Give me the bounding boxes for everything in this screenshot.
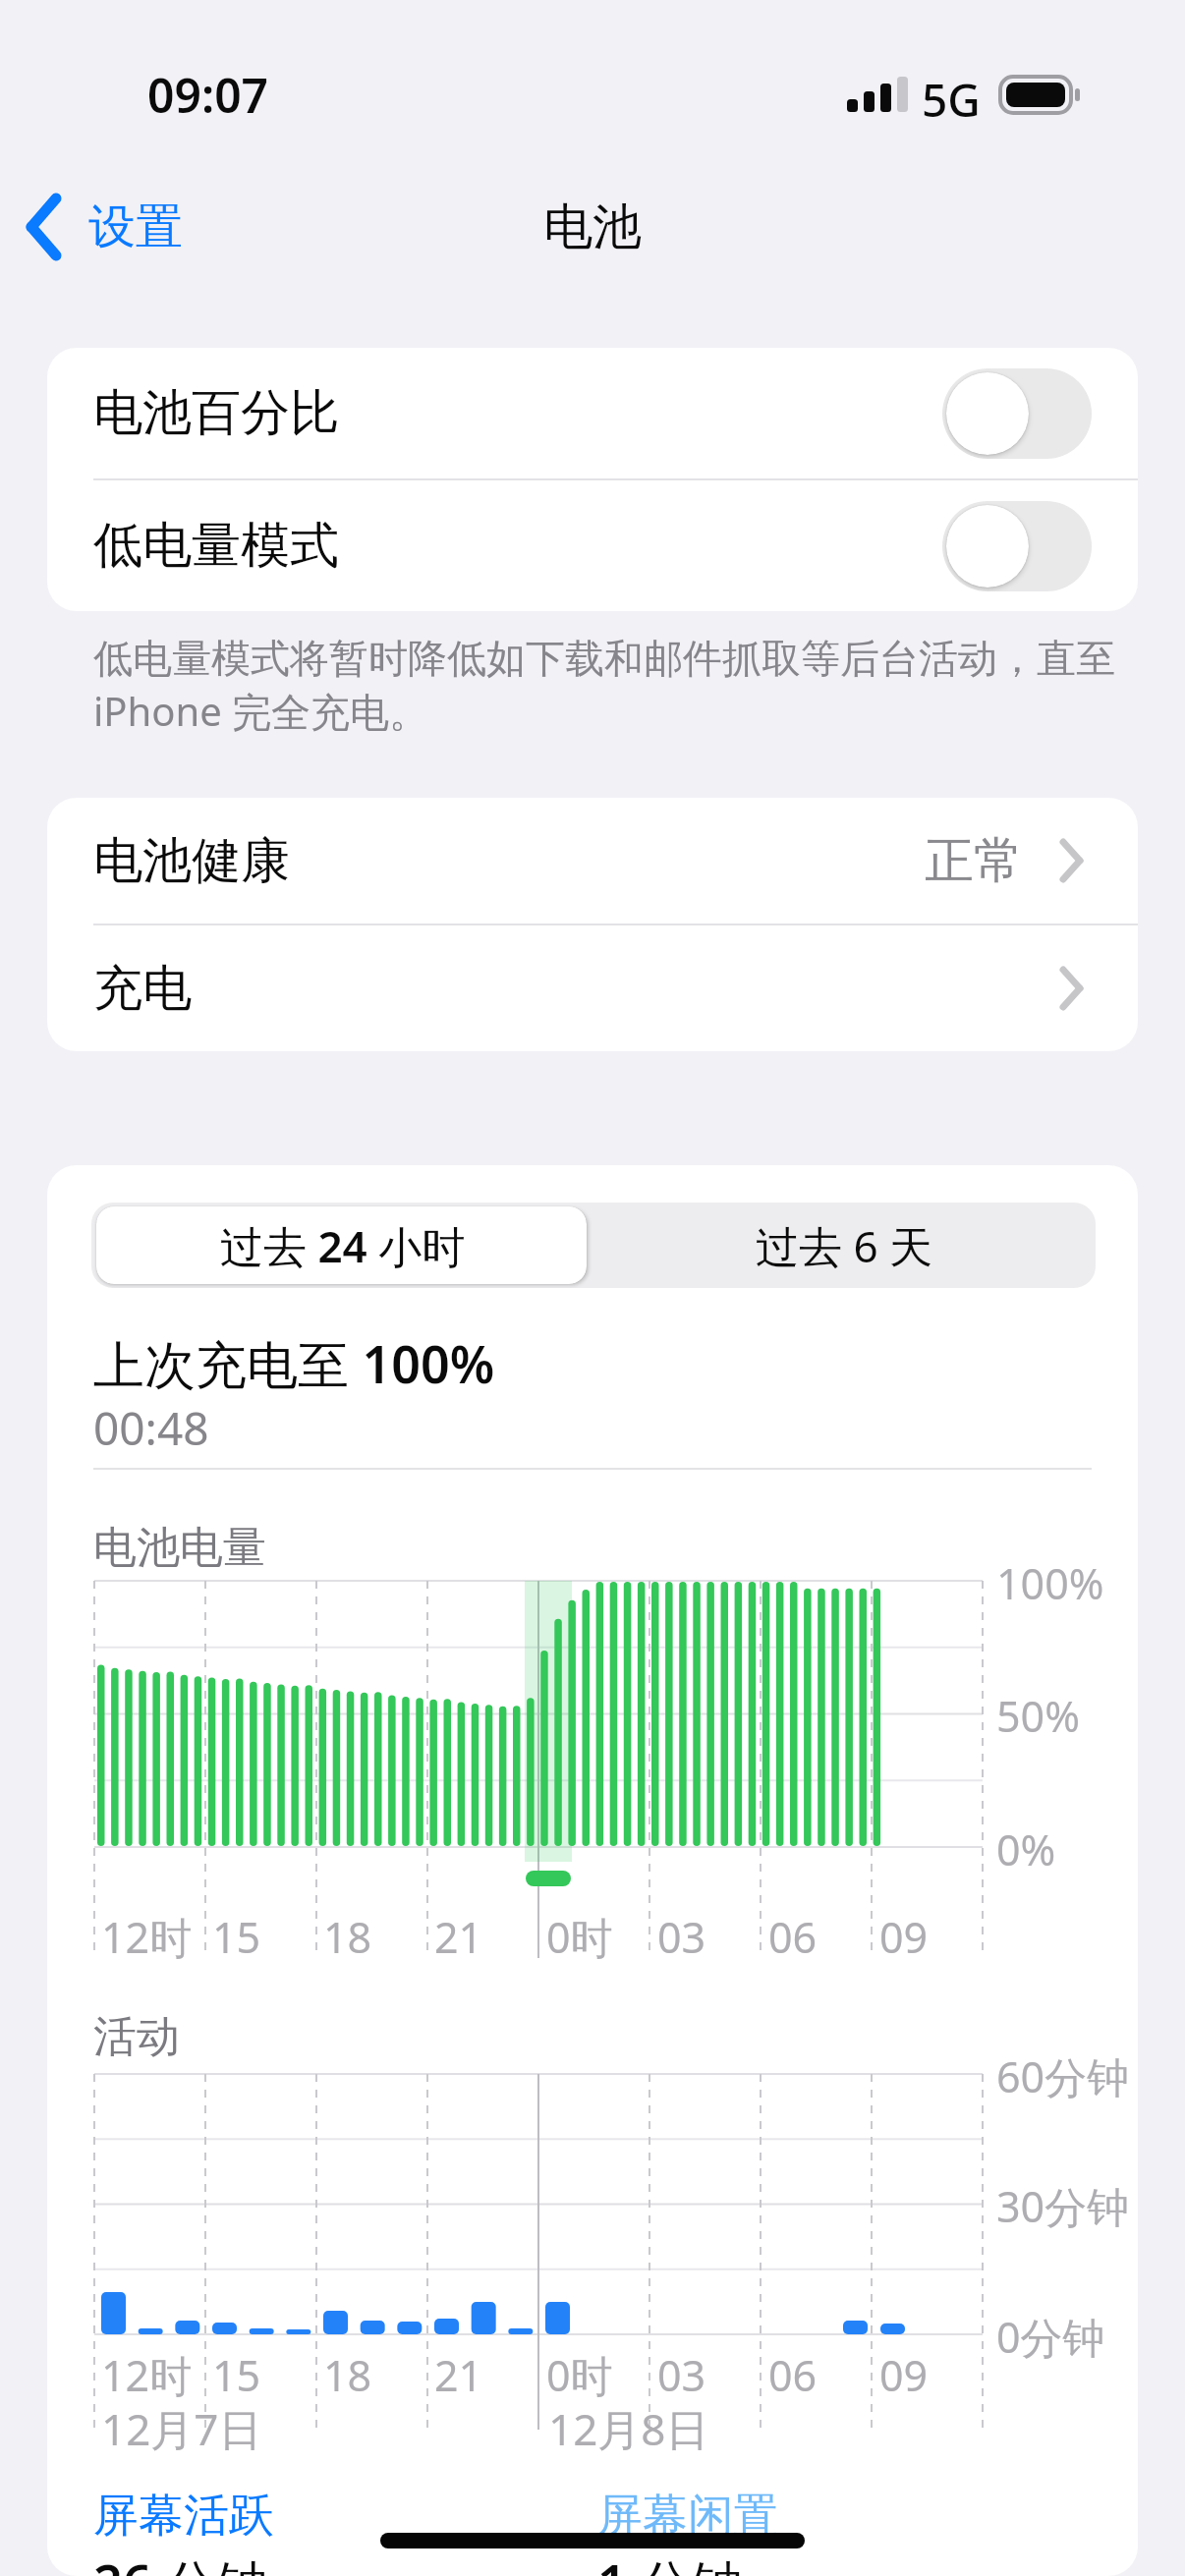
staticText: 03: [657, 2346, 706, 2404]
staticText: 15: [212, 2346, 261, 2404]
staticText: 电池电量: [93, 1521, 266, 1575]
staticText: 18: [323, 1908, 372, 1966]
staticText: 18: [323, 2346, 372, 2404]
staticText: 26 分钟: [93, 2548, 268, 2576]
staticText: 过去 6 天: [756, 1216, 933, 1275]
staticText: 06: [768, 2346, 818, 2404]
staticText: 03: [657, 1908, 706, 1966]
button[interactable]: 电池百分比: [47, 348, 1138, 478]
button[interactable]: [942, 368, 1092, 459]
staticText: 0时: [546, 1908, 613, 1966]
staticText: 正常: [925, 830, 1023, 892]
staticText: 09: [879, 1908, 929, 1966]
staticText: 电池百分比: [93, 382, 339, 444]
staticText: 100%: [996, 1554, 1104, 1612]
button[interactable]: 过去 24 小时: [91, 1203, 593, 1288]
staticText: 活动: [93, 2010, 180, 2064]
staticText: 1 分钟: [597, 2548, 743, 2576]
staticText: 12月8日: [548, 2399, 709, 2458]
staticText: 60分钟: [996, 2047, 1130, 2105]
button[interactable]: 充电: [47, 925, 1138, 1051]
button[interactable]: [942, 501, 1092, 591]
staticText: 21: [434, 1908, 483, 1966]
staticText: 06: [768, 1908, 818, 1966]
staticText: 设置: [88, 197, 183, 256]
staticText: 15: [212, 1908, 261, 1966]
button[interactable]: 屏幕闲置: [597, 2488, 778, 2545]
staticText: 5G: [922, 69, 981, 131]
button[interactable]: 屏幕活跃: [93, 2488, 274, 2545]
staticText: 低电量模式将暂时降低如下载和邮件抓取等后台活动，直至 iPhone 完全充电。: [93, 634, 1115, 738]
staticText: 09: [879, 2346, 929, 2404]
staticText: 0时: [546, 2346, 613, 2404]
staticText: 09:07: [147, 63, 269, 127]
staticText: 电池: [543, 196, 642, 258]
staticText: 00:48: [93, 1397, 209, 1459]
button[interactable]: 过去 6 天: [593, 1203, 1096, 1288]
staticText: 50%: [996, 1687, 1080, 1745]
staticText: 12月7日: [101, 2399, 262, 2458]
staticText: 上次充电至 100%: [93, 1328, 495, 1398]
button[interactable]: 低电量模式: [47, 480, 1138, 611]
staticText: 电池健康: [93, 830, 290, 892]
staticText: 过去 24 小时: [220, 1216, 466, 1275]
staticText: 12时: [101, 1908, 193, 1966]
staticText: 充电: [93, 958, 192, 1020]
button[interactable]: 电池健康: [47, 798, 1138, 924]
staticText: 12时: [101, 2346, 193, 2404]
button[interactable]: 设置: [24, 193, 183, 261]
staticText: 21: [434, 2346, 483, 2404]
staticText: 低电量模式: [93, 515, 339, 577]
staticText: 0分钟: [996, 2308, 1105, 2366]
staticText: 0%: [996, 1820, 1056, 1878]
staticText: 30分钟: [996, 2177, 1130, 2235]
